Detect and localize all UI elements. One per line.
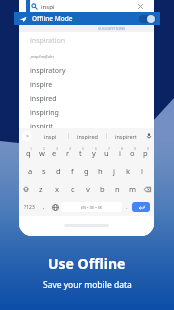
staticText: m (129, 184, 137, 194)
staticText: > (26, 133, 29, 140)
staticText: p (143, 148, 148, 158)
staticText: 0 (147, 146, 150, 151)
button[interactable]: . (122, 198, 132, 216)
button[interactable]: u (100, 144, 113, 162)
staticText: 4 (69, 146, 72, 151)
button[interactable]: Space (61, 202, 122, 212)
staticText: i (119, 148, 121, 158)
staticText: inspired (77, 133, 98, 140)
staticText: inspiring (30, 108, 59, 118)
button[interactable]: More suggestions (22, 131, 32, 141)
button[interactable]: n (110, 180, 125, 198)
button[interactable]: y (87, 144, 100, 162)
staticText: n (115, 184, 120, 194)
button[interactable]: h (93, 162, 107, 180)
staticText: . (126, 203, 128, 211)
button[interactable]: inspiratory (19, 64, 154, 78)
staticText: z (39, 184, 43, 194)
staticText: 2 (43, 146, 46, 151)
button[interactable]: m (125, 180, 140, 198)
staticText: inspire (30, 80, 53, 90)
button[interactable]: l (135, 162, 149, 180)
staticText: SUGGESTIONS (98, 26, 126, 31)
staticText: 1 (30, 146, 33, 151)
button[interactable]: p (139, 144, 152, 162)
staticText: g (84, 166, 89, 176)
staticText: ˌɪnspiˈreɪʃ(ə)n (30, 54, 54, 59)
button[interactable]: a (24, 162, 37, 180)
staticText: u (104, 148, 109, 158)
staticText: f (71, 166, 74, 176)
button[interactable]: w (35, 144, 48, 162)
button[interactable]: inspirert (107, 128, 144, 144)
staticText: inspirit (30, 122, 53, 132)
button[interactable]: q (21, 144, 35, 162)
staticText: inspirert (115, 133, 137, 140)
button[interactable]: b (95, 180, 110, 198)
staticText: Save your mobile data (43, 279, 132, 291)
button[interactable]: k (121, 162, 135, 180)
staticText: Use Offline (48, 254, 126, 273)
staticText: t (79, 148, 82, 158)
staticText: v (86, 184, 90, 194)
button[interactable]: t (74, 144, 87, 162)
staticText: l (141, 166, 143, 176)
button[interactable]: Offline Mode (14, 12, 160, 25)
staticText: a (28, 166, 33, 176)
staticText: h (98, 166, 103, 176)
button[interactable]: d (51, 162, 65, 180)
button[interactable]: g (79, 162, 93, 180)
staticText: q (26, 148, 31, 158)
button[interactable]: v (80, 180, 95, 198)
button[interactable]: Shift (19, 180, 33, 198)
button[interactable]: Backspace (140, 180, 154, 198)
staticText: r (66, 148, 70, 158)
button[interactable]: inspiration (19, 32, 154, 49)
staticText: Offline Mode (32, 14, 73, 23)
button[interactable]: r (61, 144, 74, 162)
button[interactable]: x (49, 180, 65, 198)
staticText: 9 (134, 146, 137, 151)
staticText: inspiration (30, 36, 66, 46)
staticText: inspi (44, 133, 57, 140)
button[interactable]: c (65, 180, 80, 198)
staticText: b (100, 184, 105, 194)
button[interactable]: inspiring (19, 106, 154, 120)
button[interactable]: Change language (49, 198, 61, 216)
staticText: , (43, 203, 45, 211)
staticText: s (42, 166, 46, 176)
button[interactable]: inspired (19, 92, 154, 106)
staticText: 6 (95, 146, 98, 151)
button[interactable]: j (107, 162, 121, 180)
button[interactable]: ?123 (19, 198, 39, 216)
staticText: inspiratory (30, 66, 66, 76)
button[interactable]: inspire (19, 78, 154, 92)
staticText: 8 (121, 146, 124, 151)
staticText: c (71, 184, 75, 194)
staticText: inspired (30, 94, 57, 104)
button[interactable]: , (39, 198, 49, 216)
staticText: k (126, 166, 131, 176)
button[interactable]: Voice input (144, 128, 154, 144)
button[interactable]: inspi (32, 128, 68, 144)
button[interactable]: z (33, 180, 49, 198)
staticText: ?123 (24, 204, 35, 211)
button[interactable]: inspirit (19, 120, 154, 134)
staticText: y (92, 148, 96, 158)
staticText: 5 (82, 146, 85, 151)
button[interactable]: inspired (69, 128, 106, 144)
staticText: 7 (108, 146, 111, 151)
button[interactable]: f (65, 162, 79, 180)
staticText: d (56, 166, 61, 176)
button[interactable]: o (126, 144, 139, 162)
staticText: x (55, 184, 59, 194)
button[interactable]: s (37, 162, 51, 180)
staticText: 3 (56, 146, 59, 151)
button[interactable]: e (48, 144, 61, 162)
staticText: w (39, 148, 45, 158)
button[interactable]: i (113, 144, 126, 162)
staticText: inspi (41, 3, 55, 11)
button[interactable]: Enter (132, 202, 150, 212)
staticText: o (130, 148, 135, 158)
staticText: EN • DE • SK (81, 205, 103, 210)
